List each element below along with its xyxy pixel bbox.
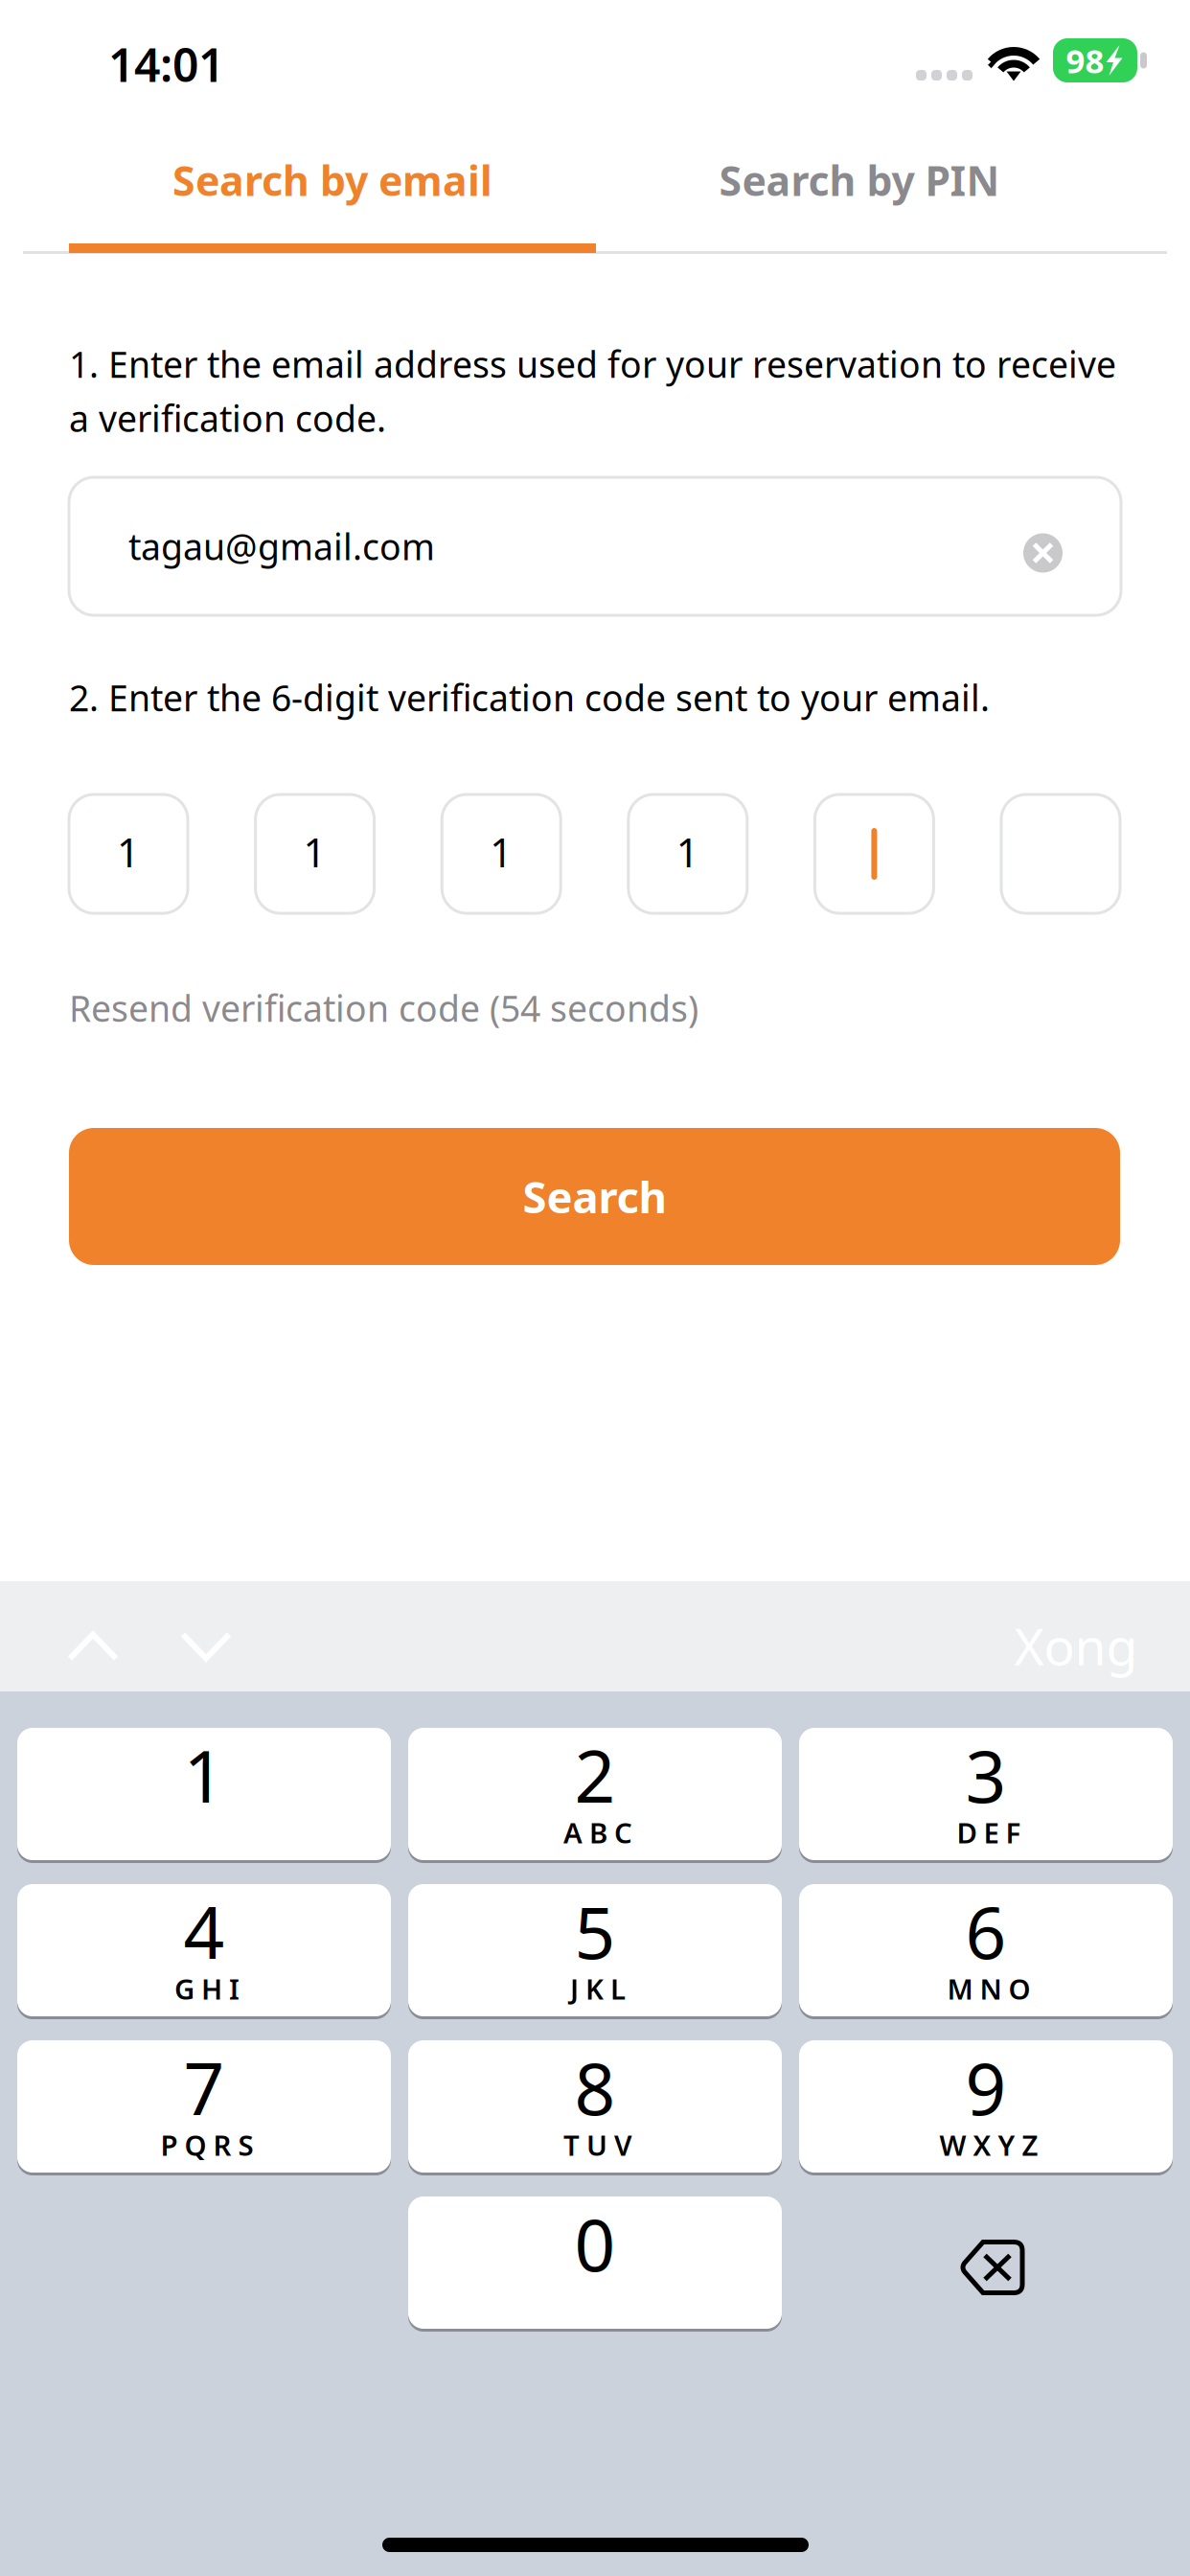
button[interactable]: Previous field (37, 1603, 149, 1690)
staticText: JKL (570, 1970, 626, 2007)
staticText: 2 (574, 1727, 616, 1822)
button[interactable]: 7 (17, 2040, 391, 2173)
button[interactable]: 1 (17, 1728, 391, 1860)
staticText: 1 (183, 1727, 225, 1822)
button[interactable]: 4 (17, 1884, 391, 2016)
button[interactable]: Xong (999, 1607, 1153, 1684)
staticText: ABC (563, 1814, 632, 1851)
button[interactable]: Verification code digit 1 (628, 794, 747, 913)
staticText: 0 (574, 2196, 616, 2291)
button[interactable]: Search (69, 1128, 1120, 1265)
staticText: 1 (490, 826, 513, 878)
staticText: Xong (1014, 1612, 1138, 1679)
staticText: 8 (574, 2040, 616, 2135)
button[interactable]: Verification code digit 1 (255, 794, 374, 913)
button[interactable]: Delete (799, 2196, 1173, 2329)
button[interactable]: 9 (799, 2040, 1173, 2173)
staticText: 14:01 (108, 34, 224, 95)
staticText: Search by PIN (719, 153, 1000, 207)
staticText: 1 (676, 826, 699, 878)
staticText: TUV (563, 2126, 632, 2163)
button[interactable]: 3 (799, 1728, 1173, 1860)
button[interactable]: tagau@gmail.com (69, 477, 1121, 615)
button[interactable]: Resend verification code (54 seconds) (69, 984, 698, 1032)
button[interactable]: Verification code digit 1 (69, 794, 188, 913)
staticText: 1 (303, 826, 326, 878)
staticText: 4 (183, 1884, 225, 1979)
button[interactable]: Next field (150, 1603, 262, 1690)
staticText: WXYZ (939, 2126, 1038, 2163)
staticText: Search (523, 1168, 666, 1225)
button[interactable]: 8 (408, 2040, 782, 2173)
staticText: DEF (957, 1814, 1021, 1851)
staticText: 5 (574, 1884, 616, 1979)
staticText: 3 (965, 1727, 1007, 1822)
button[interactable]: 6 (799, 1884, 1173, 2016)
staticText: 1 (117, 826, 140, 878)
staticText: 1. Enter the email address used for your… (69, 340, 1116, 442)
staticText: MNO (947, 1970, 1030, 2007)
staticText: Resend verification code (54 seconds) (69, 984, 698, 1032)
button[interactable]: Search by email (69, 142, 596, 218)
staticText: GHI (174, 1970, 240, 2007)
button[interactable]: Verification code digit (815, 794, 934, 913)
staticText: 9 (965, 2040, 1007, 2135)
staticText: PQRS (160, 2126, 253, 2163)
staticText: tagau@gmail.com (128, 522, 435, 570)
staticText: 6 (965, 1884, 1007, 1979)
button[interactable]: Verification code digit (1001, 794, 1120, 913)
button[interactable]: 5 (408, 1884, 782, 2016)
button[interactable]: Search by PIN (596, 142, 1123, 218)
staticText: 98 (1066, 38, 1104, 82)
staticText: 2. Enter the 6-digit verification code s… (69, 674, 990, 721)
staticText: 7 (183, 2040, 225, 2135)
button[interactable]: 2 (408, 1728, 782, 1860)
button[interactable]: Verification code digit 1 (442, 794, 561, 913)
button[interactable]: 0 (408, 2196, 782, 2329)
staticText: Search by email (172, 153, 492, 207)
